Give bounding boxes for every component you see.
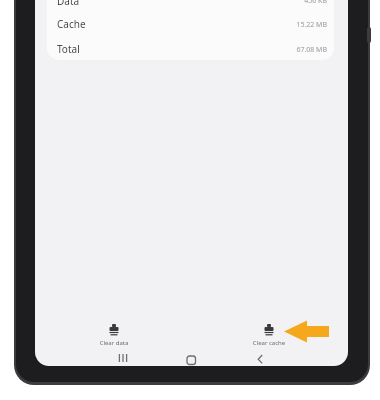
staticText: Clear data (84, 339, 144, 351)
staticText: 456 KB (227, 0, 327, 9)
staticText: 67.08 MB (227, 45, 327, 58)
staticText: Total (57, 42, 157, 58)
staticText: 15.22 MB (227, 20, 327, 33)
staticText: Cache (57, 17, 157, 33)
staticText: Data (57, 0, 157, 10)
button[interactable]: Clear cache (239, 322, 299, 352)
button[interactable] (113, 351, 133, 365)
button[interactable] (250, 352, 270, 366)
button[interactable]: Clear data (84, 322, 144, 352)
button[interactable] (181, 353, 201, 367)
staticText: Clear cache (239, 339, 299, 351)
